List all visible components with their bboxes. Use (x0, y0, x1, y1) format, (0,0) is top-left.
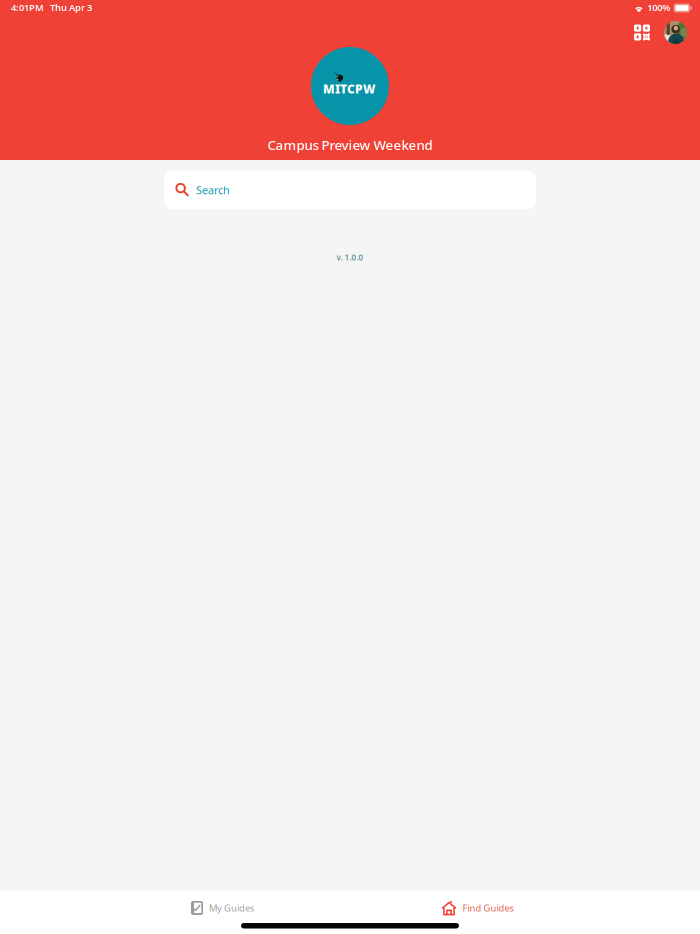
staticText: Search (196, 183, 230, 197)
button[interactable]: Search (164, 171, 536, 209)
staticText: 100% (647, 1, 670, 14)
staticText: MITCPW (323, 81, 375, 97)
button[interactable]: My Guides (95, 894, 350, 921)
button[interactable]: Profile (653, 21, 687, 44)
button[interactable]: Find Guides (350, 894, 605, 921)
staticText: My Guides (209, 902, 254, 914)
staticText: Find Guides (462, 902, 513, 914)
staticText: 4:01PM (11, 1, 44, 14)
staticText: Campus Preview Weekend (267, 136, 432, 154)
staticText: v. 1.0.0 (336, 252, 363, 263)
button[interactable]: Scan QR code (631, 21, 653, 43)
staticText: Thu Apr 3 (50, 1, 92, 14)
